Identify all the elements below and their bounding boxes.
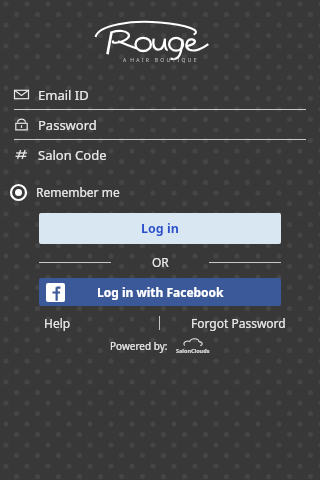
staticText: Forgot Password <box>191 315 286 331</box>
staticText: Log in with Facebook <box>97 284 224 300</box>
staticText: Remember me <box>36 184 120 200</box>
staticText: Email ID <box>38 86 89 104</box>
staticText: SalonClouds <box>176 347 210 354</box>
staticText: Password <box>38 116 97 134</box>
button[interactable]: Salon Code <box>0 140 320 169</box>
staticText: Powered by: <box>110 339 168 353</box>
staticText: Help <box>44 315 71 331</box>
staticText: Salon Code <box>38 146 107 164</box>
button[interactable]: Log in <box>39 213 281 244</box>
other: Facebook <box>46 283 65 302</box>
staticText: Log in <box>141 220 179 237</box>
button[interactable]: Forgot Password <box>183 312 294 334</box>
staticText: A H A I R B O U T I Q U E <box>123 57 198 64</box>
button[interactable]: Help <box>36 312 79 334</box>
button[interactable]: Email ID <box>0 80 320 109</box>
staticText: OR <box>152 254 169 270</box>
button[interactable]: Password <box>0 110 320 139</box>
other: Rouge - A Hair Boutique <box>90 17 230 57</box>
button[interactable]: Log in with Facebook <box>39 278 281 306</box>
button[interactable]: Remember me <box>0 180 320 204</box>
